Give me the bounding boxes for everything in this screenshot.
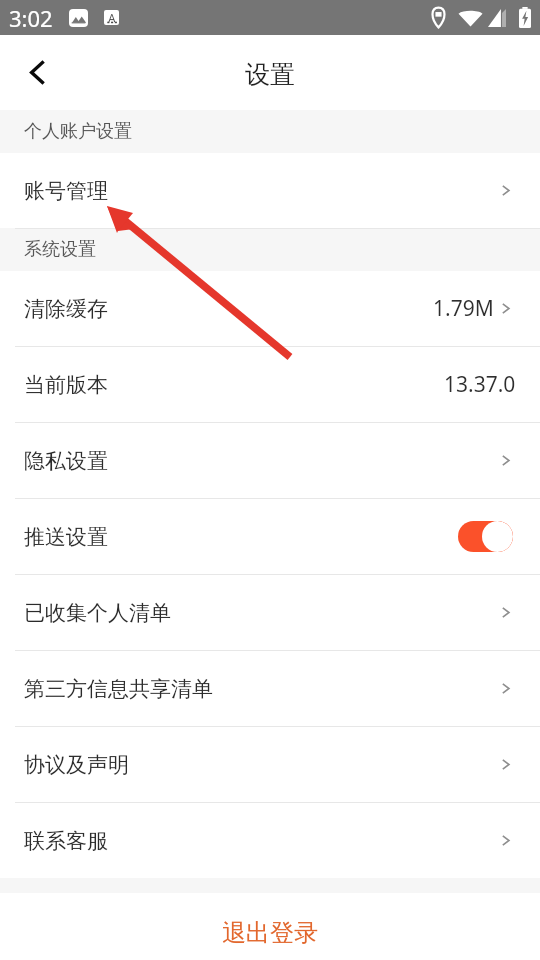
staticText: 第三方信息共享清单 xyxy=(24,676,213,702)
staticText: 隐私设置 xyxy=(24,448,108,474)
staticText: A xyxy=(108,10,116,22)
button[interactable]: 退出登录 xyxy=(0,893,540,960)
button[interactable]: 联系客服 xyxy=(0,802,540,878)
staticText: 联系客服 xyxy=(24,828,108,854)
staticText: 当前版本 xyxy=(24,372,108,398)
button[interactable]: 清除缓存 xyxy=(0,271,540,346)
staticText: 退出登录 xyxy=(222,918,318,948)
staticText: 13.37.0 xyxy=(444,370,516,399)
button[interactable]: Toggle push notifications xyxy=(458,521,513,552)
staticText: 协议及声明 xyxy=(24,752,129,778)
staticText: 推送设置 xyxy=(24,524,108,550)
staticText: 系统设置 xyxy=(24,238,96,261)
staticText: 设置 xyxy=(245,59,295,90)
button[interactable]: Back xyxy=(0,35,73,110)
button[interactable]: 协议及声明 xyxy=(0,726,540,802)
button[interactable]: 隐私设置 xyxy=(0,422,540,498)
staticText: 已收集个人清单 xyxy=(24,600,171,626)
button[interactable]: 已收集个人清单 xyxy=(0,574,540,650)
staticText: 3:02 xyxy=(9,3,53,33)
button[interactable]: 推送设置 xyxy=(0,498,540,574)
staticText: 清除缓存 xyxy=(24,296,108,322)
staticText: 个人账户设置 xyxy=(24,120,132,143)
button[interactable]: 账号管理 xyxy=(0,153,540,228)
staticText: 1.79M xyxy=(433,294,494,323)
button[interactable]: 当前版本 xyxy=(0,346,540,422)
staticText: 账号管理 xyxy=(24,178,108,204)
button[interactable]: 第三方信息共享清单 xyxy=(0,650,540,726)
